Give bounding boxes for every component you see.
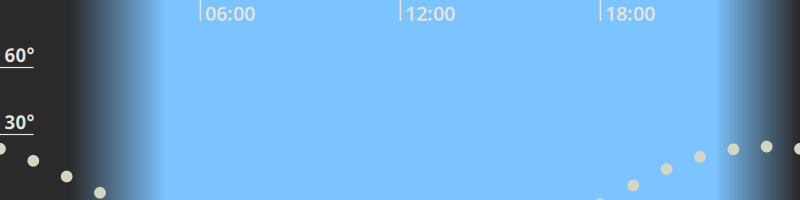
- staticText: 18:00: [605, 0, 655, 26]
- staticText: 06:00: [205, 0, 255, 26]
- staticText: 30°: [4, 110, 34, 134]
- button[interactable]: Sun path chart for the day: [0, 0, 800, 200]
- staticText: 12:00: [405, 0, 455, 26]
- staticText: 60°: [4, 43, 34, 67]
